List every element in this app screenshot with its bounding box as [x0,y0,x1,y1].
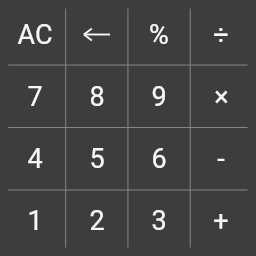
staticText: ÷ [213,19,229,51]
button[interactable]: Plus [190,190,252,252]
button[interactable]: Multiply [190,66,252,128]
button[interactable]: 4 [3,128,66,190]
button[interactable]: 3 [128,190,190,252]
staticText: % [149,19,169,51]
button[interactable]: 2 [66,190,128,252]
staticText: 5 [89,143,105,175]
button[interactable]: 8 [66,66,128,128]
staticText: 2 [89,205,105,237]
button[interactable]: 5 [66,128,128,190]
staticText: 1 [27,205,43,237]
staticText: 6 [151,143,167,175]
staticText: AC [17,19,53,51]
staticText: 8 [89,81,105,113]
button[interactable]: 9 [128,66,190,128]
button[interactable]: 7 [3,66,66,128]
staticText: 7 [27,81,43,113]
staticText: 9 [151,81,167,113]
staticText: × [214,81,229,113]
staticText: - [217,143,225,175]
button[interactable]: 6 [128,128,190,190]
button[interactable]: All clear [3,3,66,66]
button[interactable]: Percent [128,3,190,66]
button[interactable]: Backspace [66,3,128,66]
button[interactable]: Minus [190,128,252,190]
staticText: 3 [151,205,167,237]
button[interactable]: Divide [190,3,252,66]
staticText: + [213,205,229,237]
staticText: 4 [27,143,43,175]
button[interactable]: 1 [3,190,66,252]
